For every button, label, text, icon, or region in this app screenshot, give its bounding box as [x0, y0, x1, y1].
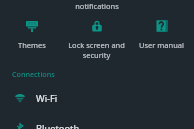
button[interactable]: Lock screen and security [64, 16, 129, 60]
button[interactable]: User manual [129, 16, 194, 50]
staticText: notifications [75, 1, 119, 11]
staticText: Bluetooth [36, 122, 80, 129]
staticText: User manual [139, 40, 184, 50]
staticText: Lock screen and security [68, 40, 125, 60]
other: User manual [156, 20, 168, 32]
other: Wi-Fi [15, 93, 25, 103]
button[interactable]: Wi-Fi [0, 83, 194, 113]
staticText: Themes [18, 40, 46, 50]
staticText: Wi-Fi [36, 92, 58, 105]
other: Bluetooth [15, 123, 25, 129]
button[interactable]: Bluetooth [0, 113, 194, 129]
staticText: Connections [12, 69, 55, 79]
other: Themes [26, 20, 38, 32]
other: Lock screen and security [91, 20, 103, 32]
button[interactable]: Themes [0, 16, 64, 50]
